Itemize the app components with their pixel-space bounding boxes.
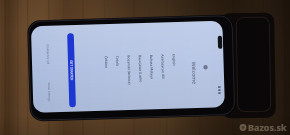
button[interactable]: English [169, 54, 181, 70]
button[interactable]: Vision settings [43, 77, 54, 99]
button[interactable]: Get started [67, 31, 76, 107]
button[interactable]: Emergency call [43, 38, 54, 63]
